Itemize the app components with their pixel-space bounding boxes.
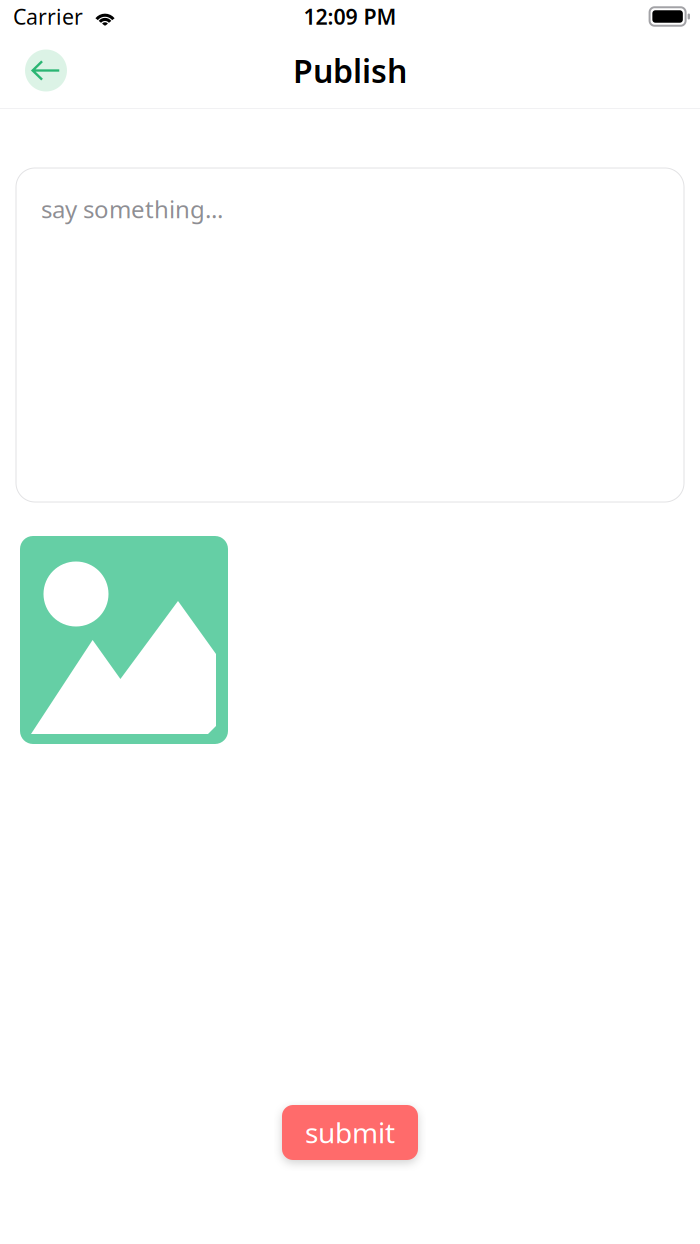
staticText: Publish [293,49,407,92]
staticText: submit [305,1114,395,1151]
button[interactable]: submit [282,1105,418,1160]
staticText: say something... [41,193,223,225]
staticText: Carrier [13,2,83,31]
staticText: 12:09 PM [303,2,396,31]
button[interactable]: Add photo [20,536,228,744]
button[interactable]: Back [25,49,67,91]
